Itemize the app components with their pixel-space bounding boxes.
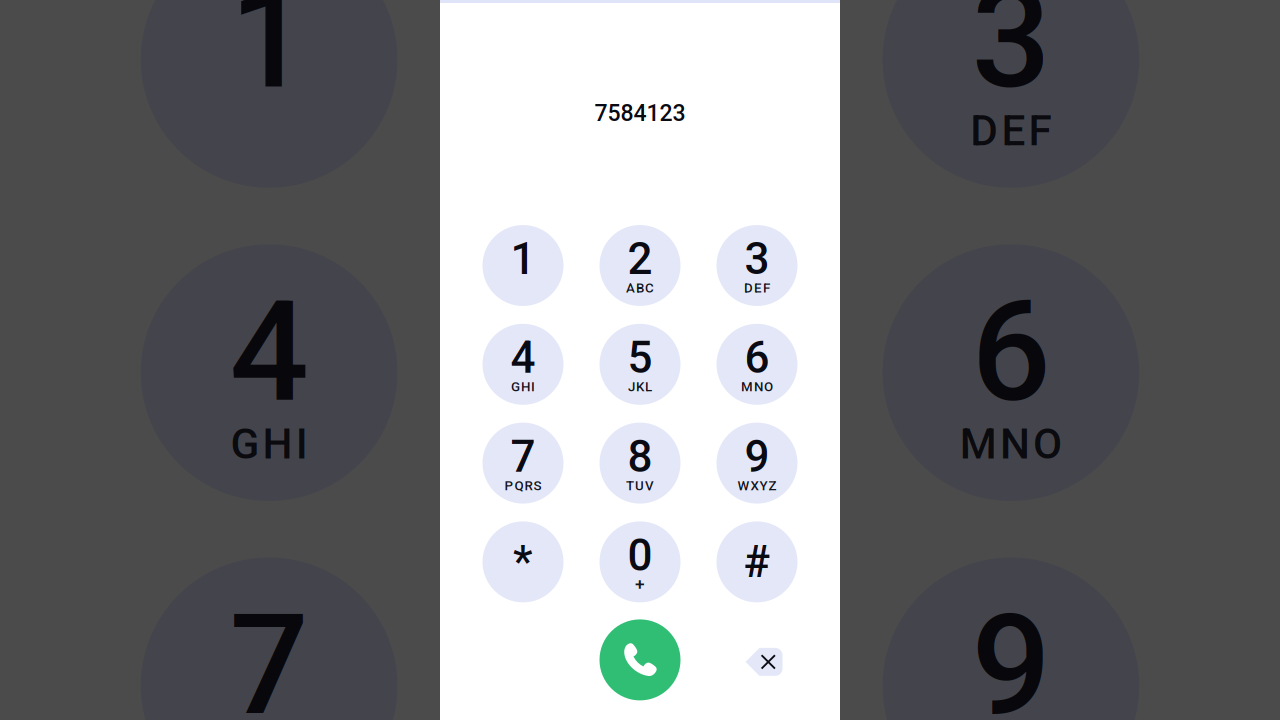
staticText: 4: [510, 332, 535, 384]
staticText: GHI: [511, 379, 535, 395]
staticText: 3: [744, 233, 769, 285]
button[interactable]: Call: [599, 619, 680, 700]
staticText: ABC: [626, 280, 654, 296]
staticText: 6: [744, 332, 769, 384]
staticText: WXYZ: [737, 478, 776, 493]
button[interactable]: 6: [716, 324, 797, 405]
staticText: 5: [627, 332, 652, 384]
button[interactable]: 5: [599, 324, 680, 405]
button[interactable]: 9: [716, 423, 797, 504]
staticText: 0: [627, 530, 652, 581]
staticText: +: [635, 574, 645, 594]
staticText: 2: [627, 233, 652, 285]
button[interactable]: 3: [716, 225, 797, 306]
staticText: MNO: [741, 379, 773, 395]
staticText: 9: [744, 431, 769, 482]
staticText: 7584123: [594, 99, 685, 126]
staticText: JKL: [628, 379, 652, 395]
staticText: 8: [627, 431, 652, 482]
button[interactable]: 4: [482, 324, 563, 405]
staticText: TUV: [626, 478, 654, 493]
staticText: #: [743, 536, 770, 588]
button[interactable]: Star: [482, 521, 563, 602]
staticText: PQRS: [504, 478, 541, 493]
button[interactable]: Delete: [716, 619, 797, 700]
button[interactable]: 7: [482, 423, 563, 504]
button[interactable]: 1: [482, 225, 563, 306]
staticText: *: [513, 536, 533, 588]
button[interactable]: Pound: [716, 521, 797, 602]
button[interactable]: 0: [599, 521, 680, 602]
button[interactable]: 8: [599, 423, 680, 504]
staticText: DEF: [744, 280, 770, 296]
button[interactable]: 2: [599, 225, 680, 306]
staticText: 1: [510, 233, 535, 285]
staticText: 7: [510, 431, 535, 482]
